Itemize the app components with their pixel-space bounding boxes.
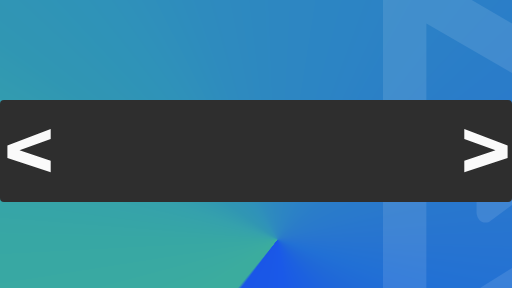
button[interactable]: Previous	[0, 124, 60, 180]
button[interactable]: Next	[452, 124, 512, 180]
